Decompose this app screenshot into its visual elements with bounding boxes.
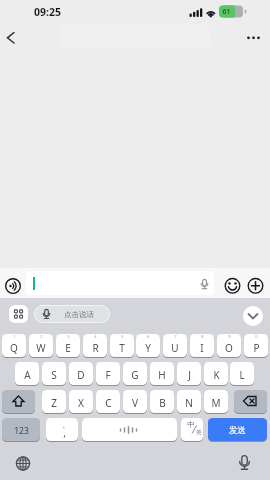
staticText: 8 [201,334,204,339]
staticText: 点击说话 [64,310,94,319]
button[interactable] [9,305,28,323]
staticText: S [51,368,57,382]
button[interactable] [234,390,267,413]
staticText: G [131,368,139,382]
staticText: 英 [196,429,202,436]
button[interactable] [2,390,35,413]
staticText: 6 [147,334,150,339]
staticText: N [185,396,193,410]
staticText: F [105,368,111,382]
button[interactable] [69,390,93,413]
button[interactable] [82,418,177,441]
staticText: T [119,341,125,355]
staticText: R [92,341,99,355]
staticText: A [24,368,31,382]
staticText: 61 [222,7,231,17]
button[interactable] [42,362,66,385]
staticText: P [253,341,260,355]
button[interactable] [29,334,53,357]
staticText: E [65,341,71,355]
button[interactable] [136,334,160,357]
staticText: U [171,341,179,355]
button[interactable] [177,362,201,385]
staticText: Z [51,396,57,410]
button[interactable] [177,390,201,413]
staticText: , [63,426,66,440]
button[interactable] [46,418,78,441]
button[interactable] [12,452,32,472]
button[interactable] [56,334,80,357]
button[interactable] [4,277,22,295]
staticText: 7 [174,334,177,339]
staticText: 发送 [229,425,246,436]
staticText: Y [145,341,151,355]
button[interactable] [244,334,268,357]
button[interactable] [190,334,214,357]
button[interactable] [150,390,174,413]
staticText: 0 [255,334,258,339]
staticText: X [78,396,84,410]
staticText: 9 [228,334,231,339]
button[interactable] [204,390,228,413]
staticText: B [159,396,166,410]
staticText: D [77,368,85,382]
button[interactable] [2,418,40,441]
staticText: O [225,341,233,355]
button[interactable] [208,418,267,441]
staticText: 5 [121,334,124,339]
button[interactable] [224,277,241,294]
button[interactable] [96,390,120,413]
staticText: 3 [67,334,70,339]
staticText: C [105,396,112,410]
button[interactable] [236,450,256,470]
staticText: 123 [14,425,29,437]
button[interactable] [34,305,110,323]
staticText: W [36,341,46,355]
button[interactable] [243,28,267,48]
staticText: 09:25 [34,5,61,19]
button[interactable] [15,362,39,385]
button[interactable] [204,362,228,385]
button[interactable] [42,390,66,413]
staticText: Q [10,341,18,355]
staticText: 中 [187,420,195,429]
button[interactable] [181,418,203,441]
staticText: H [158,368,166,382]
button[interactable] [2,334,26,357]
button[interactable] [0,28,24,52]
staticText: 1 [13,334,16,339]
staticText: I [200,341,204,355]
button[interactable] [247,277,264,294]
button[interactable] [83,334,107,357]
staticText: V [132,396,138,410]
staticText: K [213,368,220,382]
button[interactable] [123,390,147,413]
staticText: M [211,396,221,410]
staticText: 4 [94,334,97,339]
button[interactable] [163,334,187,357]
staticText: 2 [40,334,43,339]
button[interactable] [217,334,241,357]
staticText: J [188,368,191,382]
button[interactable] [26,271,214,295]
button[interactable] [123,362,147,385]
button[interactable] [110,334,134,357]
staticText: L [239,368,245,382]
button[interactable] [96,362,120,385]
button[interactable] [243,306,263,326]
button[interactable] [150,362,174,385]
button[interactable] [230,362,254,385]
button[interactable] [69,362,93,385]
